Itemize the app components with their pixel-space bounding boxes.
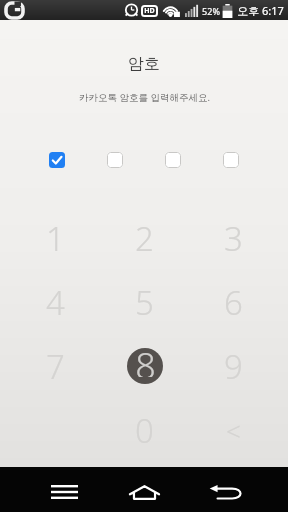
button[interactable]: 5 bbox=[100, 270, 189, 334]
button[interactable] bbox=[165, 152, 181, 168]
staticText: 3 bbox=[224, 216, 243, 261]
button[interactable]: 4 bbox=[10, 270, 100, 334]
button[interactable]: 6 bbox=[189, 270, 278, 334]
button[interactable]: 8 bbox=[100, 334, 189, 398]
staticText: 52% bbox=[202, 5, 220, 17]
button[interactable] bbox=[124, 472, 164, 512]
button[interactable] bbox=[223, 152, 239, 168]
staticText: 9 bbox=[224, 344, 243, 389]
staticText: 암호 bbox=[128, 54, 160, 74]
staticText: 7 bbox=[46, 344, 65, 389]
staticText: 0 bbox=[135, 408, 154, 453]
button[interactable] bbox=[44, 472, 84, 512]
staticText: 8 bbox=[135, 341, 156, 377]
button[interactable]: 2 bbox=[100, 206, 189, 270]
staticText: 오후 6:17 bbox=[237, 3, 284, 18]
staticText: 4 bbox=[46, 280, 65, 325]
staticText: HD bbox=[144, 6, 155, 16]
staticText: 카카오톡 암호를 입력해주세요. bbox=[79, 91, 210, 104]
staticText: 1 bbox=[46, 216, 65, 261]
button[interactable] bbox=[205, 472, 245, 512]
button[interactable] bbox=[107, 152, 123, 168]
button[interactable]: 3 bbox=[189, 206, 278, 270]
staticText: 6 bbox=[224, 280, 243, 325]
button[interactable] bbox=[49, 152, 65, 168]
staticText: 2 bbox=[135, 216, 154, 261]
staticText: 5 bbox=[135, 280, 154, 325]
staticText: < bbox=[226, 413, 241, 448]
